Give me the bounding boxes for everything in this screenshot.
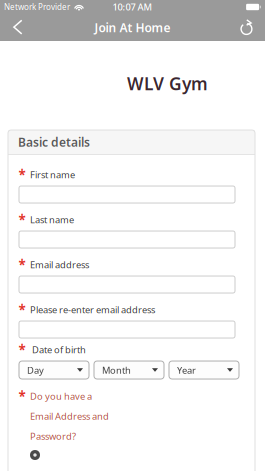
- button[interactable]: Option: [19, 450, 40, 460]
- staticText: Please re-enter email address: [30, 303, 155, 316]
- button[interactable]: Refresh: [232, 14, 262, 41]
- staticText: WLV Gym: [127, 72, 208, 95]
- staticText: *: [18, 256, 25, 273]
- button[interactable]: *: [19, 386, 235, 406]
- button[interactable]: Email Address and: [19, 406, 109, 426]
- button[interactable]: Month: [94, 361, 164, 379]
- staticText: Date of birth: [30, 343, 86, 356]
- staticText: Do you have a: [30, 390, 92, 402]
- staticText: First name: [30, 168, 75, 181]
- staticText: Day: [27, 364, 44, 376]
- staticText: Email Address and: [30, 410, 109, 422]
- staticText: *: [18, 166, 25, 183]
- staticText: Network Provider: [4, 2, 70, 12]
- staticText: 10:07 AM: [112, 1, 152, 13]
- button[interactable]: Day: [19, 361, 89, 379]
- staticText: Year: [177, 364, 196, 376]
- staticText: *: [18, 301, 25, 318]
- staticText: Basic details: [18, 134, 90, 150]
- staticText: Password?: [30, 430, 76, 442]
- button[interactable]: Year: [169, 361, 239, 379]
- staticText: *: [18, 211, 25, 228]
- staticText: Month: [102, 364, 131, 376]
- staticText: Join At Home: [94, 19, 170, 35]
- staticText: Email address: [30, 258, 89, 271]
- staticText: *: [18, 341, 25, 358]
- staticText: *: [18, 387, 25, 405]
- staticText: Last name: [30, 213, 74, 226]
- button[interactable]: Password?: [19, 426, 76, 446]
- button[interactable]: Back: [3, 14, 33, 41]
